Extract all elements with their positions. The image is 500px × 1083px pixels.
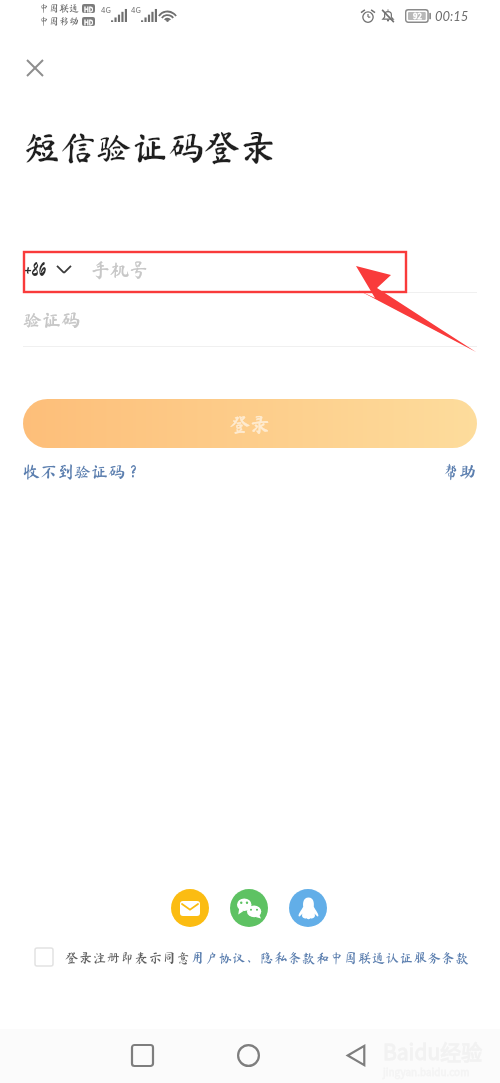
staticText: 中国联通 [39,3,79,13]
button[interactable]: Back [334,1034,377,1077]
staticText: HD [84,4,94,13]
staticText: 帮助 [442,463,476,480]
button[interactable]: Close [19,52,51,84]
button[interactable]: 收不到验证码？ [23,463,142,480]
staticText: 手机号 [91,260,149,279]
staticText: 4G [101,4,111,16]
button[interactable]: 登录 [23,399,477,448]
staticText: HD [84,17,94,26]
staticText: 登录 [230,414,270,434]
staticText: 00:15 [435,8,469,24]
button[interactable]: QQ login [289,889,327,927]
staticText: Baidu经验 [383,1036,483,1066]
button[interactable]: Agree to terms checkbox [35,948,53,966]
staticText: 中国移动 [39,16,79,26]
button[interactable]: 登录注册即表示同意用户协议、隐私条款和中国联通认证服务条款 [65,951,470,964]
button[interactable]: WeChat login [230,889,268,927]
button[interactable]: 帮助 [442,463,476,480]
staticText: 验证码 [23,310,81,329]
staticText: +86 [24,260,47,279]
button[interactable]: Email login [171,889,209,927]
button[interactable]: 验证码 [23,296,477,342]
staticText: 92 [413,10,422,22]
button[interactable]: +86 [24,249,477,289]
staticText: 短信验证码登录 [24,129,277,165]
button[interactable]: Home [227,1034,270,1077]
button[interactable]: Recents [121,1034,164,1077]
staticText: 4G [131,4,141,16]
